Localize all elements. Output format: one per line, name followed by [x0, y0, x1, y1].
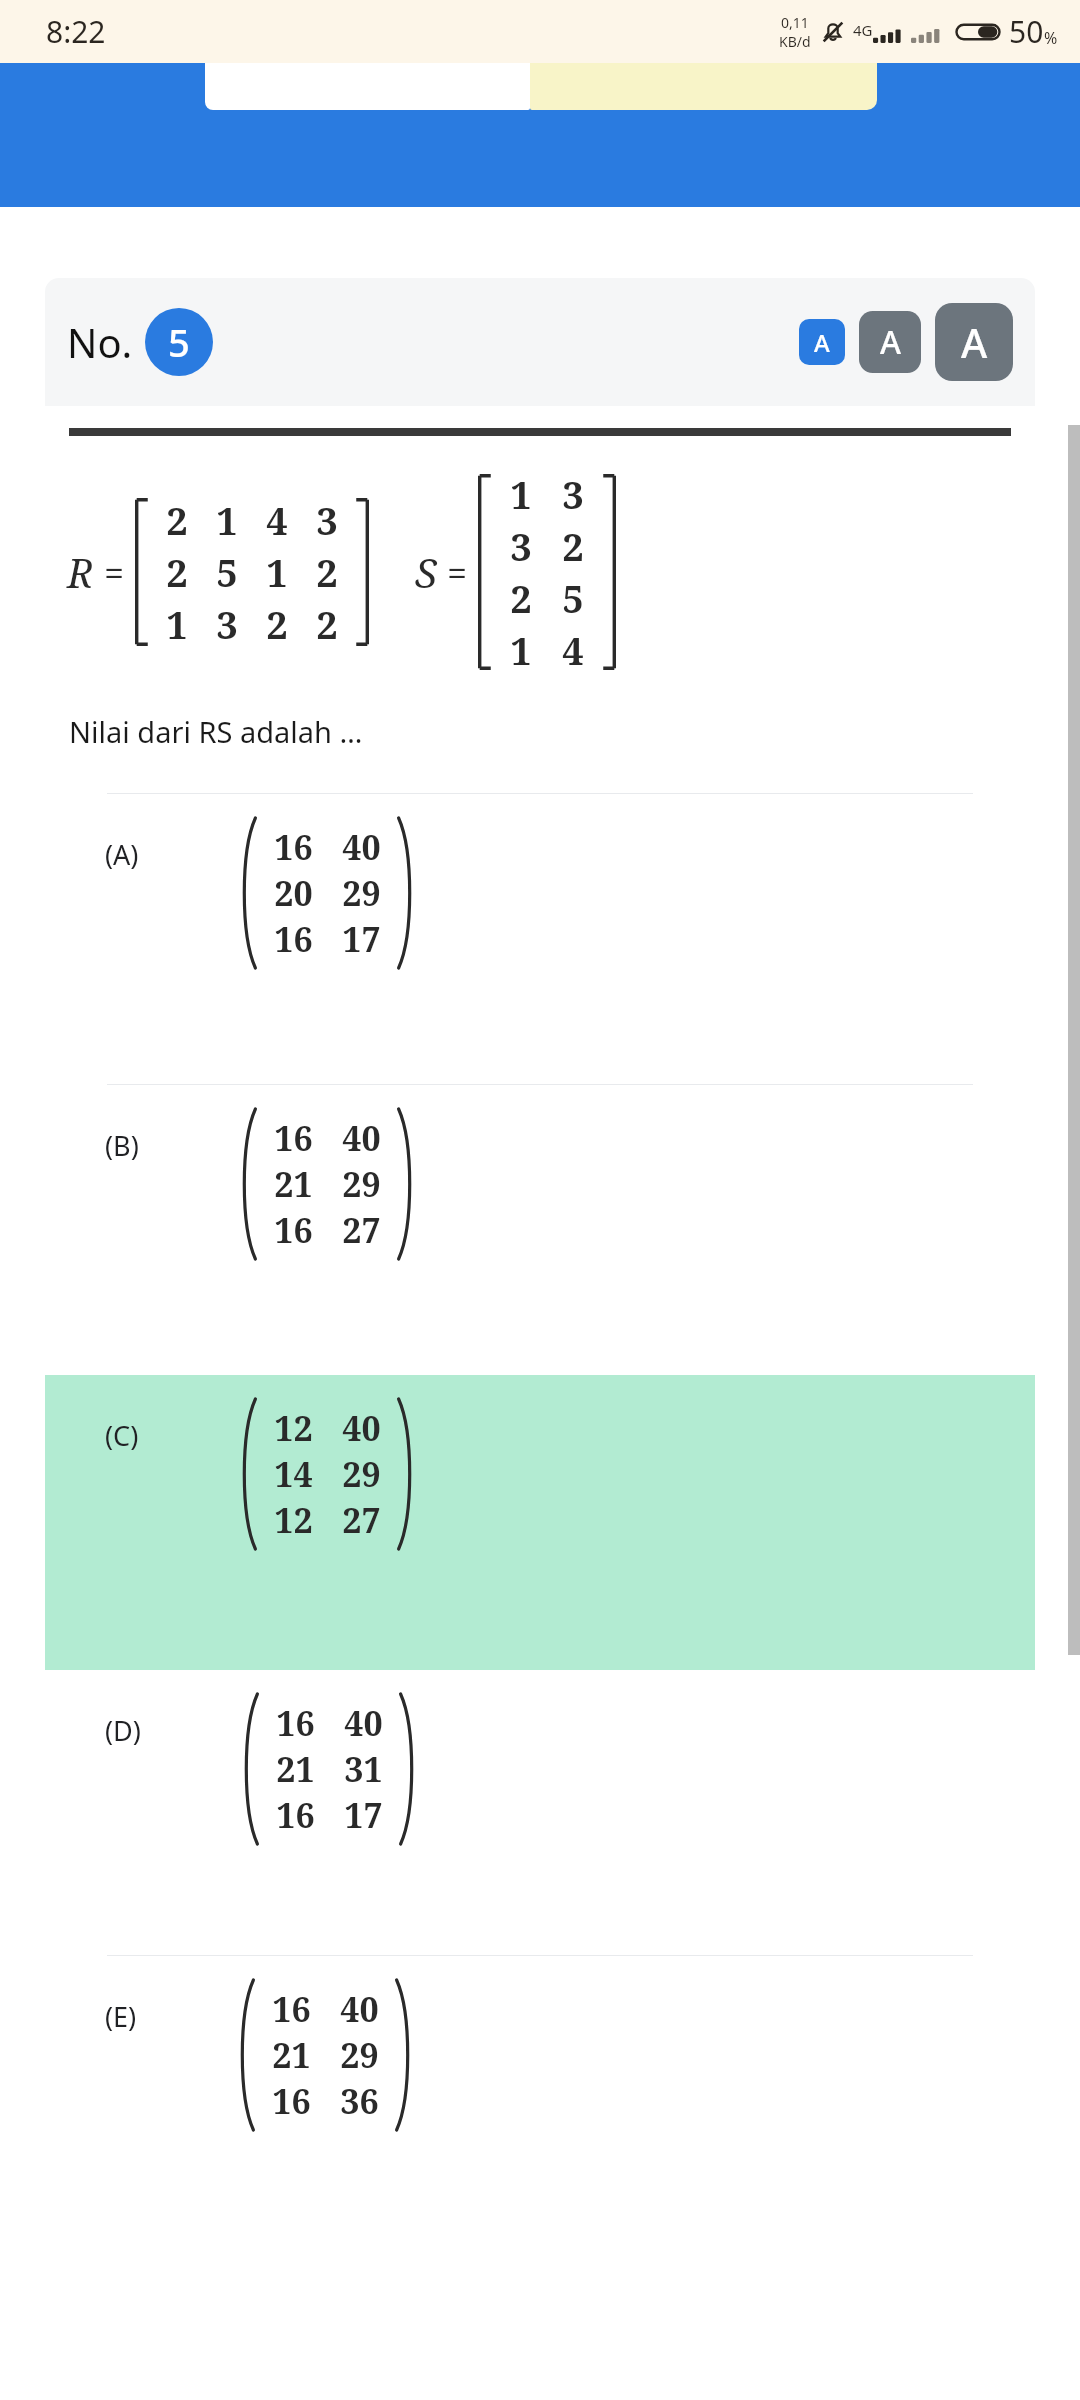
- staticText: 21: [276, 1746, 315, 1792]
- staticText: 1: [266, 546, 288, 598]
- staticText: 4: [266, 494, 288, 546]
- staticText: (E): [105, 1998, 137, 2035]
- staticText: 1: [510, 624, 532, 676]
- staticText: 40: [342, 824, 381, 870]
- button[interactable]: Tab 1: [205, 63, 530, 110]
- staticText: 2: [316, 598, 338, 650]
- staticText: 12: [274, 1497, 313, 1543]
- staticText: =: [104, 548, 125, 597]
- staticText: 4G: [853, 20, 873, 40]
- staticText: (B): [105, 1127, 139, 1164]
- staticText: 16: [276, 1792, 315, 1838]
- staticText: 5: [168, 316, 190, 368]
- staticText: 16: [272, 1986, 311, 2032]
- staticText: 16: [274, 824, 313, 870]
- staticText: 5: [216, 546, 238, 598]
- button[interactable]: Large text size: [935, 303, 1013, 381]
- button[interactable]: (C): [45, 1375, 1035, 1670]
- staticText: S: [415, 545, 437, 599]
- staticText: 50: [1009, 11, 1044, 52]
- staticText: 29: [342, 1451, 381, 1497]
- staticText: 0,11: [781, 13, 809, 32]
- button[interactable]: Tab 2: [530, 63, 877, 110]
- button[interactable]: (A): [45, 794, 1035, 1084]
- staticText: 21: [274, 1161, 313, 1207]
- staticText: 36: [340, 2078, 379, 2124]
- staticText: 2: [562, 520, 584, 572]
- staticText: 1: [216, 494, 238, 546]
- staticText: (A): [105, 836, 139, 873]
- staticText: 29: [342, 870, 381, 916]
- staticText: 29: [342, 1161, 381, 1207]
- staticText: 5: [562, 572, 584, 624]
- staticText: 40: [340, 1986, 379, 2032]
- staticText: 3: [316, 494, 338, 546]
- button[interactable]: (E): [45, 1956, 1035, 2241]
- staticText: 27: [342, 1207, 381, 1253]
- staticText: No.: [67, 315, 133, 369]
- staticText: 40: [342, 1405, 381, 1451]
- staticText: 27: [342, 1497, 381, 1543]
- staticText: 14: [274, 1451, 313, 1497]
- staticText: 2: [316, 546, 338, 598]
- staticText: 3: [562, 468, 584, 520]
- staticText: 2: [166, 546, 188, 598]
- staticText: 2: [510, 572, 532, 624]
- button[interactable]: (D): [45, 1670, 1035, 1955]
- staticText: 40: [344, 1700, 383, 1746]
- staticText: Nilai dari RS adalah …: [69, 712, 363, 751]
- staticText: 2: [166, 494, 188, 546]
- staticText: A: [880, 320, 901, 364]
- staticText: R: [67, 545, 94, 599]
- staticText: 1: [166, 598, 188, 650]
- staticText: 3: [216, 598, 238, 650]
- staticText: 17: [342, 916, 381, 962]
- staticText: A: [961, 315, 988, 369]
- staticText: =: [447, 548, 468, 597]
- staticText: (C): [105, 1417, 139, 1454]
- staticText: 20: [274, 870, 313, 916]
- staticText: KB/d: [779, 32, 811, 51]
- staticText: 16: [274, 916, 313, 962]
- staticText: 4: [562, 624, 584, 676]
- staticText: 31: [344, 1746, 383, 1792]
- staticText: 17: [344, 1792, 383, 1838]
- staticText: 8:22: [46, 11, 106, 52]
- staticText: 2: [266, 598, 288, 650]
- button[interactable]: Small text size: [799, 319, 845, 365]
- staticText: 29: [340, 2032, 379, 2078]
- staticText: 16: [274, 1115, 313, 1161]
- staticText: 16: [274, 1207, 313, 1253]
- staticText: 21: [272, 2032, 311, 2078]
- staticText: 16: [272, 2078, 311, 2124]
- staticText: 12: [274, 1405, 313, 1451]
- staticText: %: [1044, 27, 1058, 49]
- staticText: 1: [510, 468, 532, 520]
- staticText: 3: [510, 520, 532, 572]
- staticText: 16: [276, 1700, 315, 1746]
- button[interactable]: Medium text size: [859, 311, 921, 373]
- staticText: (D): [105, 1712, 141, 1749]
- staticText: 40: [342, 1115, 381, 1161]
- staticText: A: [814, 326, 830, 359]
- button[interactable]: (B): [45, 1085, 1035, 1375]
